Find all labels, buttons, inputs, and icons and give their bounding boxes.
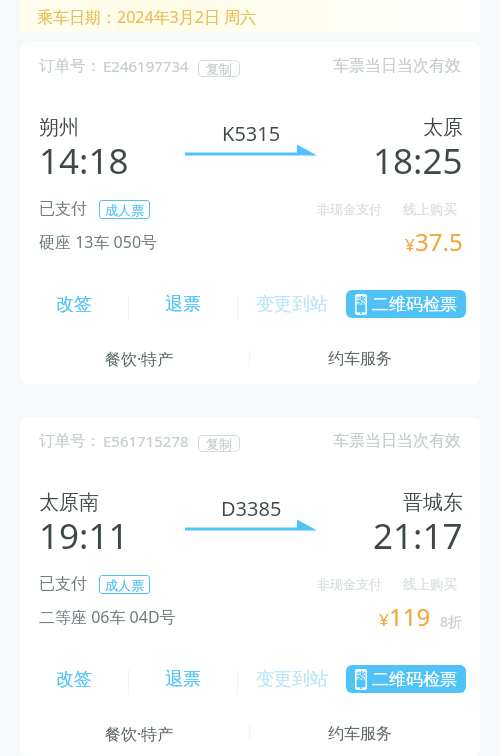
button[interactable]: 约车服务 — [250, 723, 470, 743]
staticText: 18:25 — [373, 137, 463, 185]
staticText: 19:11 — [39, 512, 129, 560]
button[interactable]: 改签 — [20, 285, 128, 329]
staticText: 变更到站 — [256, 668, 328, 691]
staticText: 非现金支付 — [317, 201, 382, 217]
staticText: 订单号： — [39, 56, 101, 76]
staticText: 14:18 — [39, 137, 129, 185]
staticText: ¥ — [379, 608, 389, 631]
staticText: 约车服务 — [328, 724, 392, 744]
staticText: 119 — [389, 600, 431, 633]
button[interactable]: 退票 — [129, 660, 237, 704]
staticText: 太原 — [423, 115, 463, 140]
staticText: 已支付 — [39, 199, 87, 219]
button[interactable]: 约车服务 — [250, 348, 470, 368]
staticText: 21:17 — [373, 512, 463, 560]
staticText: 订单号： — [39, 431, 101, 451]
staticText: 车票当日当次有效 — [333, 431, 461, 451]
staticText: 退票 — [165, 293, 201, 316]
button[interactable]: 变更到站 — [238, 660, 346, 704]
staticText: 成人票 — [105, 577, 144, 593]
staticText: 变更到站 — [256, 293, 328, 316]
staticText: 改签 — [56, 293, 92, 316]
staticText: 车票当日当次有效 — [333, 56, 461, 76]
staticText: 37.5 — [415, 225, 463, 258]
staticText: 二维码检票 — [372, 294, 457, 315]
staticText: 改签 — [56, 668, 92, 691]
staticText: E246197734 — [103, 56, 189, 76]
button[interactable]: 二维码检票 — [346, 290, 466, 318]
other: 二维码检票 — [355, 669, 367, 690]
other: 二维码检票 — [355, 294, 367, 315]
staticText: 朔州 — [39, 115, 79, 140]
staticText: 复制 — [206, 61, 232, 77]
staticText: 线上购买 — [403, 201, 457, 218]
staticText: 晋城东 — [403, 490, 463, 515]
button[interactable]: 餐饮·特产 — [30, 347, 249, 369]
staticText: 餐饮·特产 — [105, 723, 174, 745]
staticText: 非现金支付 — [317, 576, 382, 592]
staticText: 二等座 06车 04D号 — [39, 606, 176, 628]
staticText: 退票 — [165, 668, 201, 691]
staticText: D3385 — [221, 495, 282, 522]
staticText: 乘车日期：2024年3月2日 周六 — [37, 6, 257, 28]
staticText: 线上购买 — [403, 576, 457, 593]
button[interactable]: 改签 — [20, 660, 128, 704]
staticText: ¥ — [405, 233, 415, 256]
button[interactable]: 复制 — [198, 60, 240, 77]
staticText: 二维码检票 — [372, 669, 457, 690]
staticText: E561715278 — [103, 431, 189, 451]
staticText: 餐饮·特产 — [105, 348, 174, 370]
staticText: 已支付 — [39, 574, 87, 594]
staticText: 约车服务 — [328, 349, 392, 369]
button[interactable]: 退票 — [129, 285, 237, 329]
button[interactable]: 二维码检票 — [346, 665, 466, 693]
button[interactable]: 餐饮·特产 — [30, 722, 249, 744]
staticText: 成人票 — [105, 202, 144, 218]
staticText: K5315 — [222, 120, 281, 147]
staticText: 复制 — [206, 436, 232, 452]
button[interactable]: 变更到站 — [238, 285, 346, 329]
staticText: 太原南 — [39, 490, 99, 515]
button[interactable]: 复制 — [198, 435, 240, 452]
staticText: 8折 — [440, 612, 463, 631]
staticText: 硬座 13车 050号 — [39, 231, 158, 253]
